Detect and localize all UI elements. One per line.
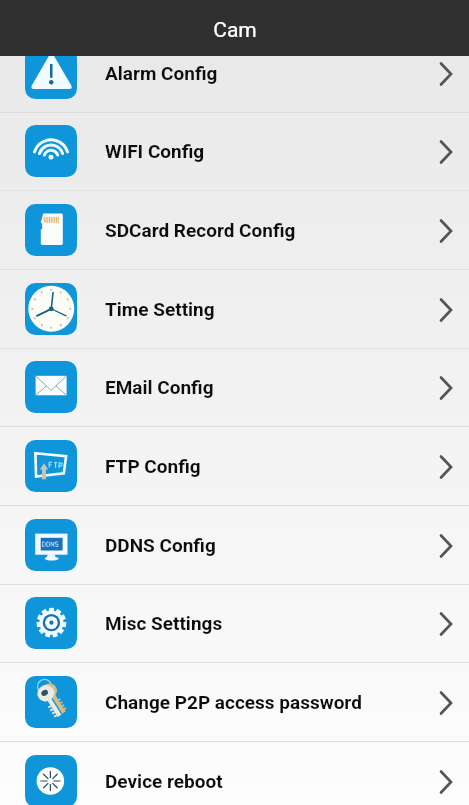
- other: Open: [431, 530, 461, 560]
- staticText: FTP Config: [105, 455, 431, 477]
- staticText: DDNS Config: [105, 534, 431, 556]
- button[interactable]: Cam: [0, 0, 469, 56]
- button[interactable]: SDCard Record Config: [0, 190, 469, 269]
- other: Open: [431, 294, 461, 324]
- staticText: Misc Settings: [105, 612, 431, 634]
- other: Open: [431, 136, 461, 166]
- button[interactable]: Device reboot: [0, 741, 469, 805]
- button[interactable]: Change P2P access password: [0, 662, 469, 741]
- other: Open: [431, 687, 461, 717]
- staticText: Alarm Config: [105, 62, 431, 84]
- staticText: Time Setting: [105, 298, 431, 320]
- button[interactable]: WIFI Config: [0, 111, 469, 190]
- button[interactable]: EMail Config: [0, 347, 469, 426]
- staticText: EMail Config: [105, 376, 431, 398]
- staticText: SDCard Record Config: [105, 219, 431, 241]
- button[interactable]: Misc Settings: [0, 583, 469, 662]
- other: Open: [431, 608, 461, 638]
- other: Open: [431, 451, 461, 481]
- button[interactable]: Time Setting: [0, 269, 469, 348]
- button[interactable]: DDNS Config: [0, 505, 469, 584]
- other: Open: [431, 215, 461, 245]
- staticText: WIFI Config: [105, 140, 431, 162]
- staticText: Device reboot: [105, 770, 431, 792]
- other: Open: [431, 58, 461, 88]
- button[interactable]: Alarm Config: [0, 33, 469, 112]
- staticText: Change P2P access password: [105, 691, 431, 713]
- other: Open: [431, 766, 461, 796]
- other: Open: [431, 372, 461, 402]
- button[interactable]: FTP Config: [0, 426, 469, 505]
- staticText: Cam: [213, 18, 257, 43]
